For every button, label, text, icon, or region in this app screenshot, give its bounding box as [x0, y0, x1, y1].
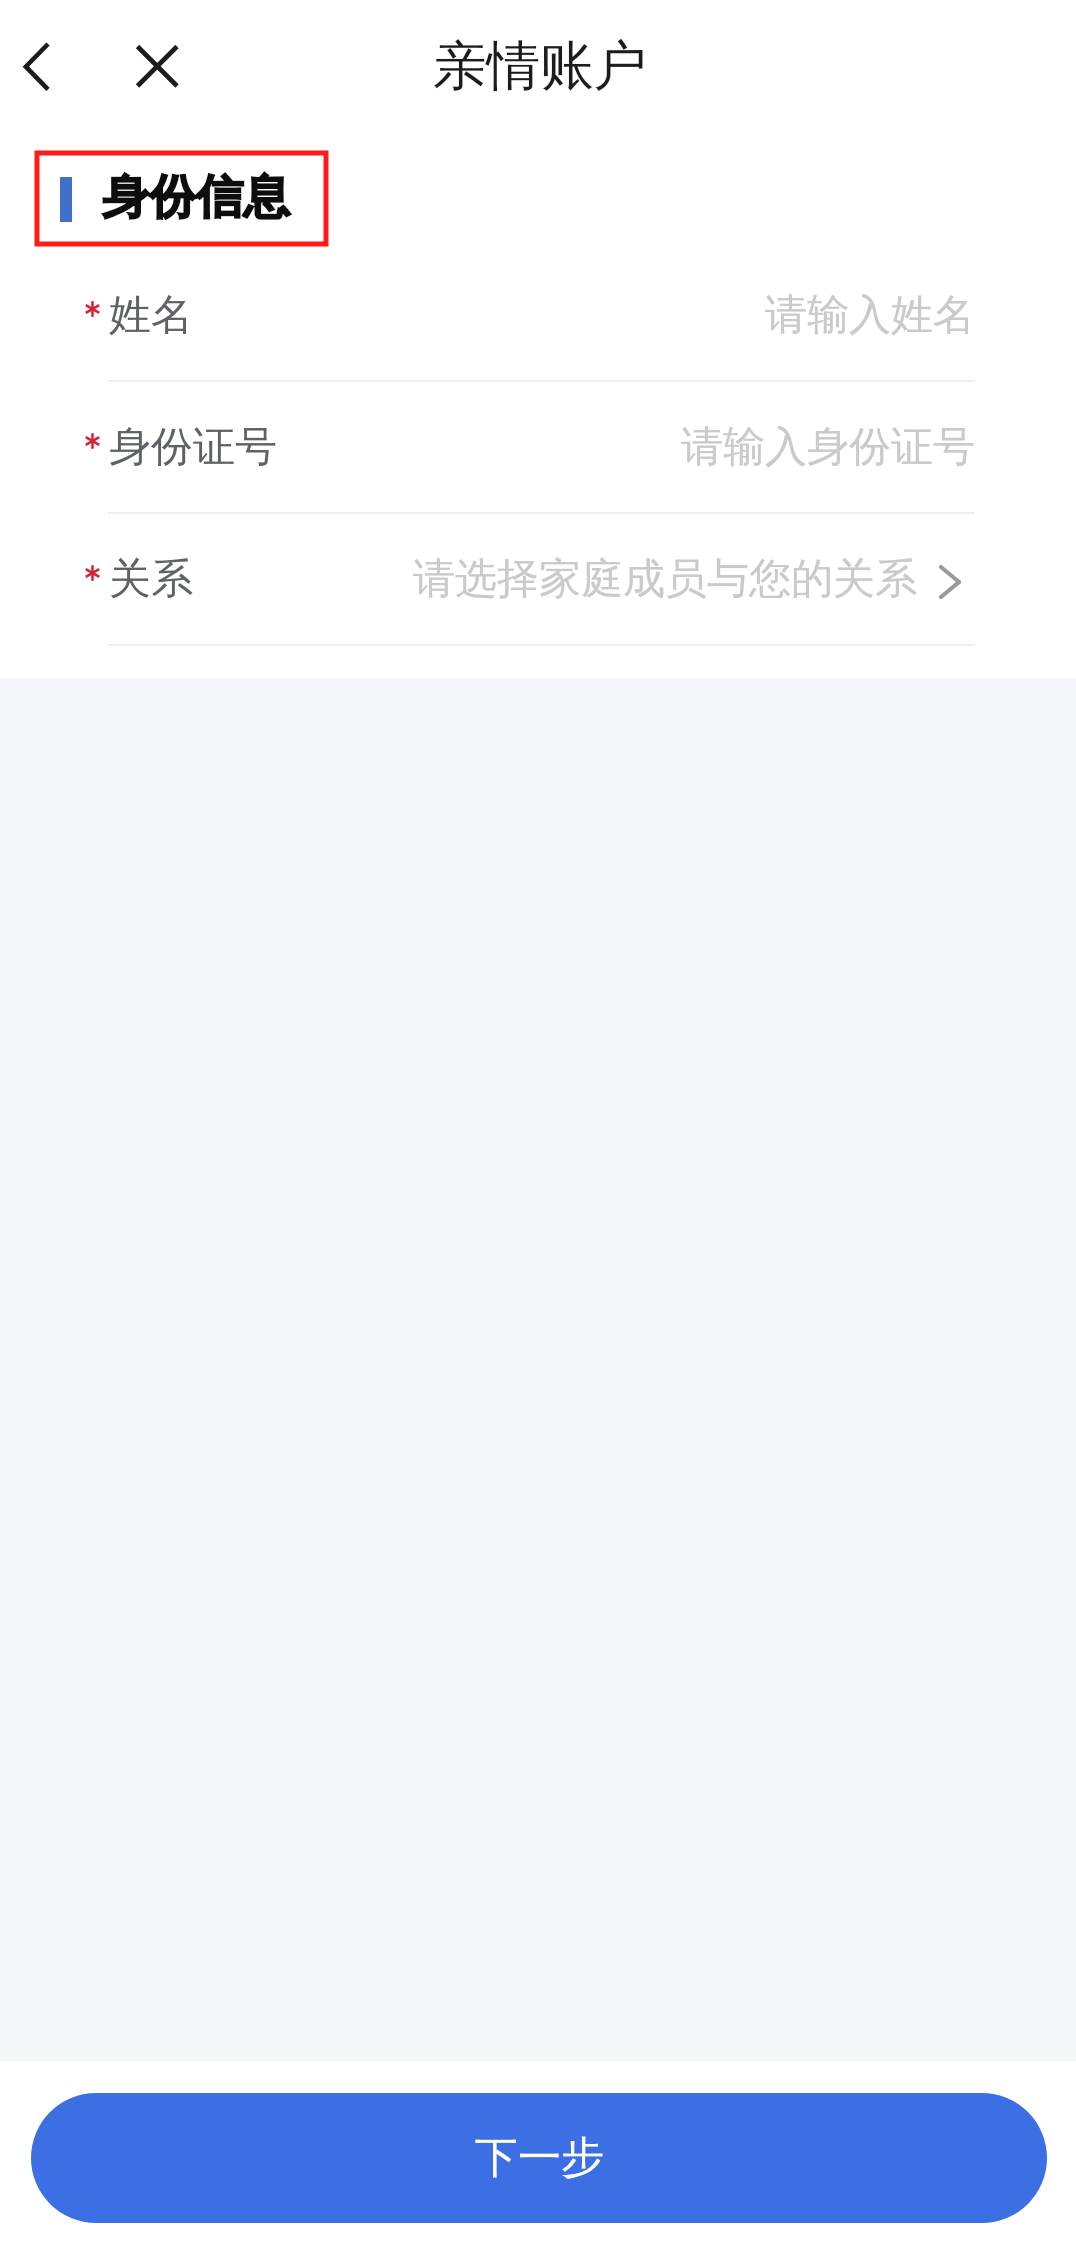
staticText: 请输入身份证号 — [681, 421, 975, 474]
staticText: 姓名 — [109, 289, 193, 342]
staticText: 关系 — [109, 553, 193, 606]
button[interactable]: Close — [115, 27, 199, 111]
staticText: 身份信息 — [102, 168, 290, 227]
staticText: 身份证号 — [109, 421, 277, 474]
button[interactable]: Back — [0, 22, 76, 110]
staticText: 下一步 — [475, 2131, 604, 2185]
staticText: 请输入姓名 — [765, 289, 975, 342]
button[interactable]: 关系 — [0, 514, 1076, 646]
button[interactable]: 下一步 — [31, 2093, 1047, 2223]
button[interactable]: 姓名 — [0, 250, 1076, 382]
staticText: 请选择家庭成员与您的关系 — [413, 553, 917, 606]
staticText: 亲情账户 — [433, 32, 647, 99]
button[interactable]: 身份证号 — [0, 382, 1076, 514]
